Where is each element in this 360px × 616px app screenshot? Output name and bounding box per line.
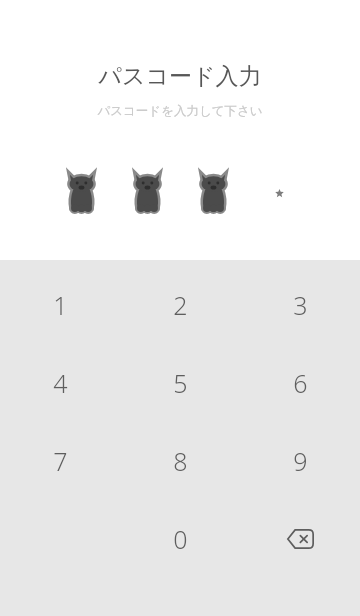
staticText: パスコードを入力して下さい — [97, 103, 263, 119]
button[interactable]: 9 — [240, 422, 360, 500]
button[interactable]: 4 — [0, 344, 120, 422]
button[interactable]: 5 — [120, 344, 240, 422]
staticText: 7 — [53, 444, 68, 478]
staticText: 8 — [173, 444, 188, 478]
staticText: 1 — [53, 288, 68, 322]
button[interactable]: 0 — [120, 500, 240, 578]
button[interactable]: 1 — [0, 266, 120, 344]
staticText: 0 — [173, 522, 188, 556]
staticText: 6 — [293, 366, 308, 400]
button[interactable]: 3 — [240, 266, 360, 344]
staticText: パスコード入力 — [98, 62, 262, 91]
button[interactable]: 8 — [120, 422, 240, 500]
staticText: 9 — [293, 444, 308, 478]
button[interactable]: Delete — [240, 500, 360, 578]
staticText: 3 — [293, 288, 308, 322]
button[interactable]: 7 — [0, 422, 120, 500]
staticText: 4 — [53, 366, 68, 400]
button[interactable]: 2 — [120, 266, 240, 344]
staticText: 2 — [173, 288, 188, 322]
button[interactable]: 6 — [240, 344, 360, 422]
staticText: 5 — [173, 366, 188, 400]
